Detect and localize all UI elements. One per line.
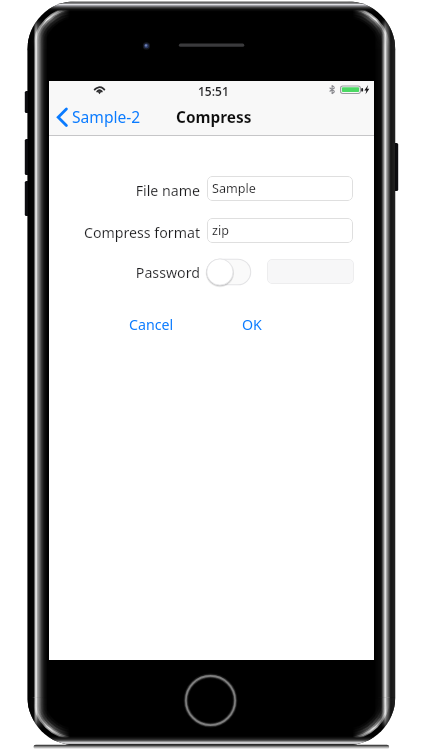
staticText: File name <box>49 181 200 200</box>
staticText: Compress <box>176 107 252 128</box>
staticText: 15:51 <box>198 83 229 99</box>
button[interactable]: Cancel <box>127 312 176 336</box>
button[interactable]: Sample <box>207 176 353 201</box>
button[interactable]: Password enabled toggle <box>206 258 252 286</box>
staticText: Compress format <box>49 223 200 242</box>
staticText: Sample <box>212 180 256 197</box>
staticText: Password <box>49 263 200 282</box>
staticText: Cancel <box>129 315 174 334</box>
staticText: zip <box>212 222 229 239</box>
staticText: OK <box>242 315 262 334</box>
staticText: Sample-2 <box>72 106 141 127</box>
button[interactable]: Sample-2 <box>49 103 149 130</box>
button[interactable]: OK <box>227 312 276 336</box>
button[interactable]: zip <box>207 218 353 243</box>
